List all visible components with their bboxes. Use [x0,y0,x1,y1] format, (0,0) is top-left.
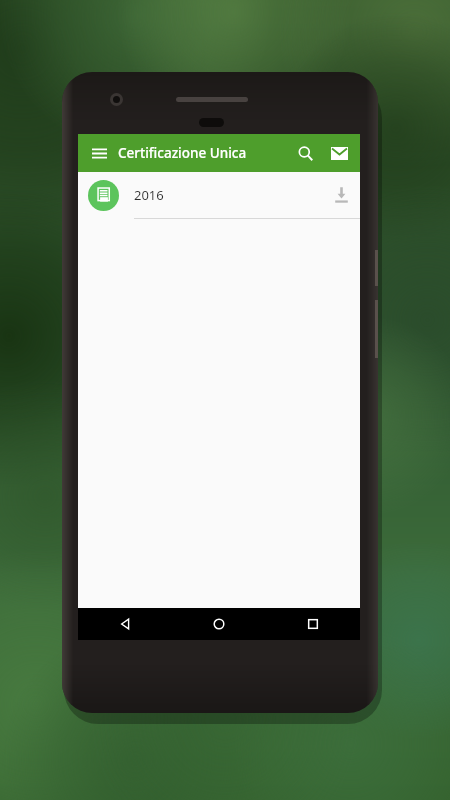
staticText: 2016 [134,186,322,204]
button[interactable]: Search [290,138,320,168]
button[interactable]: Home [172,608,266,640]
button[interactable]: Messages [324,138,354,168]
button[interactable]: Download [322,176,360,214]
button[interactable]: Open navigation menu [84,138,114,168]
button[interactable]: Back [78,608,172,640]
button[interactable]: 2016 [78,172,360,218]
button[interactable]: Recent apps [266,608,360,640]
staticText: Certificazione Unica [118,144,247,162]
